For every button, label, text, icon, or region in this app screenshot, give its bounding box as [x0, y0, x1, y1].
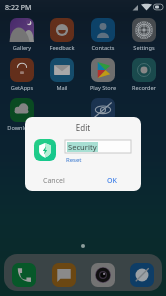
staticText: Cancel — [43, 176, 65, 186]
staticText: Security — [68, 142, 97, 152]
button[interactable]: Play Store — [82, 58, 124, 92]
staticText: Gallery — [1, 44, 43, 52]
staticText: Contacts — [82, 44, 124, 52]
button[interactable]: GetApps — [1, 58, 43, 92]
button[interactable]: Messages — [52, 263, 76, 287]
staticText: Mail — [41, 84, 83, 92]
button[interactable]: Hidden apps — [91, 98, 115, 122]
button[interactable]: Browser — [130, 263, 154, 287]
button[interactable]: Phone — [12, 263, 36, 287]
button[interactable]: Mail — [41, 58, 83, 92]
button[interactable]: Settings — [123, 18, 165, 52]
staticText: GetApps — [1, 84, 43, 92]
button[interactable]: Reset — [66, 156, 82, 164]
staticText: Feedback — [41, 44, 83, 52]
button[interactable]: Feedback — [41, 18, 83, 52]
button[interactable]: Downloads — [1, 98, 43, 132]
staticText: Edit — [25, 122, 141, 133]
button[interactable]: Camera — [91, 263, 115, 287]
button[interactable]: OK — [83, 173, 141, 189]
button[interactable]: Gallery — [1, 18, 43, 52]
staticText: OK — [107, 176, 117, 186]
staticText: Play Store — [82, 84, 124, 92]
button[interactable]: Contacts — [82, 18, 124, 52]
staticText: Settings — [123, 44, 165, 52]
button[interactable]: Security — [65, 140, 131, 153]
staticText: Recorder — [123, 84, 165, 92]
button[interactable]: Recorder — [123, 58, 165, 92]
button[interactable]: Cancel — [25, 173, 83, 189]
staticText: Downloads — [1, 124, 43, 132]
staticText: 8:22 PM — [5, 3, 32, 13]
